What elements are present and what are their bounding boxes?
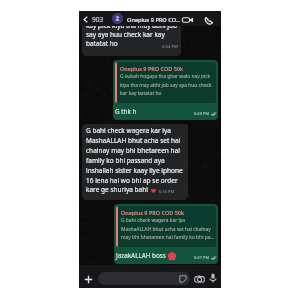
button[interactable]: Oneplus 9 PRO COD 50k	[114, 204, 218, 264]
button[interactable]: Video call	[181, 13, 195, 27]
staticText: G subah hogaya tha ghar walo nay pick ki…	[120, 73, 212, 96]
staticText: G bahi check wagera kar lya MashaALLAH b…	[86, 126, 185, 185]
staticText: 6:33 PM	[194, 111, 210, 116]
button[interactable]: kay pick kiya tha may abhi job	[82, 18, 181, 56]
staticText: Oneplus 9 PRO COD 50k	[120, 65, 184, 72]
staticText: kay pick kiya tha may abhi job	[86, 21, 177, 30]
button[interactable]: Oneplus 9 PRO COD 50k	[113, 60, 218, 120]
button[interactable]: G bahi check wagera kar lya MashaALLAH b…	[82, 124, 188, 200]
staticText: G bahi check wagera kar lya MashaALLAH b…	[121, 217, 215, 240]
staticText: batatat ho	[86, 39, 118, 48]
staticText: Oneplus 9 PRO CO...	[127, 16, 181, 24]
button[interactable]	[98, 272, 190, 285]
button[interactable]: Profile photo	[112, 13, 123, 24]
staticText: JazakALLAH boss	[116, 251, 168, 260]
staticText: Oneplus 9 PRO COD 50k	[121, 209, 185, 216]
staticText: say aya huu check kar kay	[86, 30, 165, 39]
staticText: 6:36 PM	[159, 189, 175, 194]
button[interactable]: Camera	[193, 272, 206, 285]
button[interactable]: Call	[201, 13, 215, 27]
button[interactable]: Back	[80, 14, 90, 24]
staticText: G thk h	[115, 107, 137, 116]
button[interactable]: Attach	[82, 273, 94, 285]
staticText: 6:37 PM	[194, 255, 210, 260]
staticText: 903	[92, 15, 104, 24]
button[interactable]: Voice message	[207, 272, 219, 284]
staticText: 6:04 PM	[162, 44, 178, 50]
staticText: kare ge shuriya bahi	[86, 185, 150, 194]
